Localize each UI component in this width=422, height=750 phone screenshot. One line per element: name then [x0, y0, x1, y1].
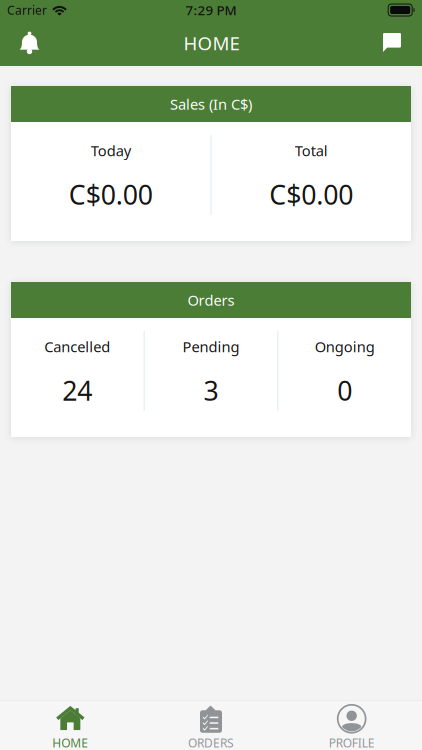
- button[interactable]: Notifications: [5, 21, 54, 65]
- staticText: ORDERS: [188, 735, 234, 750]
- staticText: 3: [203, 373, 218, 408]
- staticText: Today: [91, 141, 131, 160]
- staticText: Sales (In C$): [170, 94, 252, 114]
- staticText: Ongoing: [315, 337, 375, 356]
- staticText: C$0.00: [269, 177, 353, 212]
- staticText: Orders: [187, 290, 234, 310]
- button[interactable]: Messages: [369, 21, 417, 65]
- staticText: HOME: [52, 735, 88, 750]
- staticText: Total: [295, 141, 328, 160]
- staticText: PROFILE: [329, 735, 375, 750]
- staticText: HOME: [183, 31, 239, 55]
- staticText: 0: [337, 373, 352, 408]
- staticText: Carrier: [7, 2, 47, 18]
- staticText: 24: [62, 373, 92, 408]
- button[interactable]: ORDERS: [141, 700, 281, 750]
- button[interactable]: PROFILE: [281, 700, 422, 750]
- staticText: Cancelled: [44, 337, 110, 356]
- staticText: C$0.00: [69, 177, 153, 212]
- staticText: Pending: [182, 337, 239, 356]
- button[interactable]: HOME: [0, 700, 141, 750]
- staticText: 7:29 PM: [185, 1, 236, 19]
